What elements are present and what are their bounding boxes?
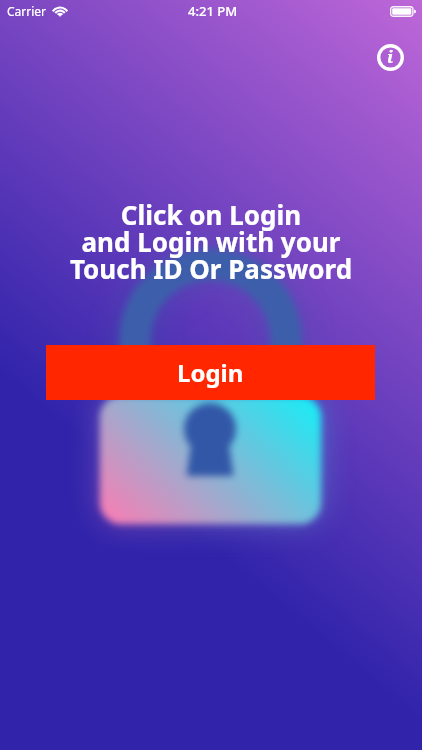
button[interactable]: Login (46, 345, 375, 400)
button[interactable]: Info (372, 39, 408, 75)
staticText: Login (177, 356, 244, 389)
staticText: i (387, 45, 394, 68)
staticText: Carrier (7, 3, 47, 19)
staticText: Click on Login and Login with your Touch… (0, 197, 422, 287)
staticText: 4:21 PM (188, 2, 238, 20)
